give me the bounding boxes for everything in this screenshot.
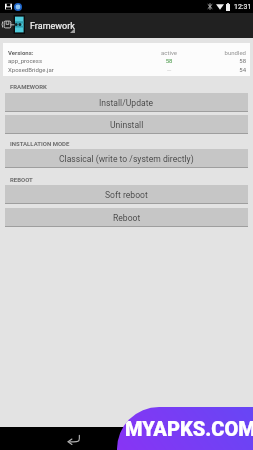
staticText: bundled: [173, 49, 246, 56]
staticText: Classical (write to /system directly): [59, 154, 194, 164]
button[interactable]: Soft reboot: [5, 185, 248, 204]
button[interactable]: Reboot: [5, 208, 248, 227]
staticText: XposedBridge.jar: [8, 66, 54, 73]
staticText: 54: [173, 66, 246, 73]
staticText: 58: [173, 57, 246, 64]
staticText: Reboot: [113, 213, 141, 223]
button[interactable]: Back: [62, 428, 84, 450]
staticText: FRAMEWORK: [10, 83, 47, 90]
button[interactable]: Framework: [0, 13, 253, 38]
staticText: REBOOT: [10, 176, 33, 183]
button[interactable]: Install/Update: [5, 93, 248, 112]
button[interactable]: Classical (write to /system directly): [5, 149, 248, 168]
staticText: Framework: [30, 21, 75, 32]
staticText: app_process: [8, 57, 42, 64]
staticText: Uninstall: [110, 120, 144, 130]
staticText: MYAPKS.COM: [125, 417, 253, 440]
staticText: 58: [137, 57, 201, 64]
staticText: Versions:: [8, 49, 34, 56]
staticText: Install/Update: [99, 98, 154, 108]
button[interactable]: Uninstall: [5, 115, 248, 134]
staticText: active: [137, 49, 201, 56]
staticText: Soft reboot: [105, 190, 148, 200]
staticText: INSTALLATION MODE: [10, 140, 70, 147]
staticText: 12:31: [234, 3, 252, 11]
